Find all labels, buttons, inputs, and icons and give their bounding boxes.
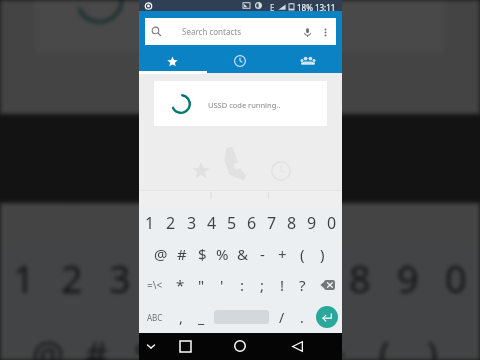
- staticText: +: [326, 329, 347, 360]
- staticText: 7: [301, 253, 323, 305]
- button[interactable]: More options: [317, 24, 333, 40]
- staticText: !: [280, 275, 285, 295]
- button[interactable]: 1: [0, 242, 48, 316]
- button[interactable]: @: [24, 316, 72, 360]
- staticText: ": [198, 275, 205, 295]
- button[interactable]: 2: [160, 207, 181, 238]
- button[interactable]: 9: [302, 207, 322, 238]
- button[interactable]: %: [168, 316, 216, 360]
- button[interactable]: 5: [192, 242, 240, 316]
- button[interactable]: &: [232, 238, 252, 269]
- button[interactable]: Search contacts: [145, 18, 336, 45]
- staticText: Search contacts: [182, 26, 241, 37]
- staticText: 6: [247, 212, 257, 234]
- button[interactable]: 7: [262, 207, 282, 238]
- staticText: $: [134, 329, 155, 360]
- button[interactable]: Recents: [206, 47, 274, 75]
- button[interactable]: 8: [336, 242, 384, 316]
- button[interactable]: -: [252, 238, 272, 269]
- button[interactable]: #: [72, 316, 120, 360]
- staticText: -: [282, 329, 294, 360]
- button[interactable]: $: [192, 238, 212, 269]
- staticText: 5: [205, 253, 227, 305]
- button[interactable]: ': [212, 269, 232, 301]
- staticText: %: [177, 329, 207, 360]
- staticText: 2: [61, 253, 83, 305]
- button[interactable]: _: [191, 301, 211, 333]
- button[interactable]: 2: [48, 242, 96, 316]
- button[interactable]: 9: [384, 242, 432, 316]
- button[interactable]: 6: [242, 207, 262, 238]
- button[interactable]: Enter: [316, 306, 338, 328]
- button[interactable]: !: [272, 269, 292, 301]
- staticText: 3: [109, 253, 131, 305]
- button[interactable]: (: [292, 238, 312, 269]
- staticText: 3: [187, 212, 197, 234]
- button[interactable]: Recent apps: [173, 334, 197, 358]
- button[interactable]: Favourites: [139, 47, 206, 75]
- button[interactable]: @: [150, 238, 171, 269]
- button[interactable]: .: [292, 301, 312, 333]
- button[interactable]: (: [360, 316, 408, 360]
- staticText: #: [177, 244, 187, 264]
- button[interactable]: ,: [170, 301, 191, 333]
- button[interactable]: Backspace: [312, 269, 342, 301]
- staticText: E: [270, 2, 275, 13]
- button[interactable]: 4: [202, 207, 222, 238]
- staticText: 8: [287, 212, 297, 234]
- button[interactable]: :: [232, 269, 252, 301]
- button[interactable]: 1: [139, 207, 160, 238]
- button[interactable]: *: [170, 269, 191, 301]
- staticText: 8: [349, 253, 371, 305]
- button[interactable]: ): [312, 238, 332, 269]
- button[interactable]: %: [212, 238, 232, 269]
- staticText: ;: [260, 275, 265, 295]
- staticText: %: [216, 244, 229, 264]
- button[interactable]: 0: [322, 207, 342, 238]
- button[interactable]: Space: [211, 301, 272, 333]
- button[interactable]: Voice search: [299, 24, 315, 40]
- staticText: USSD code running..: [208, 100, 281, 110]
- button[interactable]: =\<: [139, 269, 170, 301]
- button[interactable]: 6: [240, 242, 288, 316]
- staticText: @: [32, 329, 64, 360]
- staticText: _: [198, 308, 205, 327]
- button[interactable]: #: [171, 238, 192, 269]
- button[interactable]: Contacts: [274, 47, 342, 75]
- button[interactable]: ": [191, 269, 212, 301]
- staticText: 18% 13:11: [297, 2, 336, 13]
- staticText: 0: [327, 212, 337, 234]
- staticText: *: [176, 275, 185, 295]
- staticText: @: [154, 244, 168, 264]
- button[interactable]: 5: [222, 207, 242, 238]
- staticText: 4: [207, 212, 217, 234]
- button[interactable]: 7: [288, 242, 336, 316]
- button[interactable]: ): [408, 316, 456, 360]
- button[interactable]: -: [264, 316, 312, 360]
- button[interactable]: Hide keyboard: [139, 334, 163, 358]
- button[interactable]: 8: [282, 207, 302, 238]
- staticText: 1: [145, 212, 155, 234]
- button[interactable]: Back: [285, 334, 309, 358]
- button[interactable]: +: [312, 316, 360, 360]
- button[interactable]: 3: [181, 207, 202, 238]
- staticText: 2: [166, 212, 176, 234]
- staticText: 9: [397, 253, 419, 305]
- button[interactable]: /: [272, 301, 292, 333]
- staticText: 0: [445, 253, 467, 305]
- staticText: +: [278, 244, 287, 264]
- button[interactable]: $: [120, 316, 168, 360]
- button[interactable]: 3: [96, 242, 144, 316]
- staticText: ?: [299, 275, 306, 295]
- button[interactable]: ABC: [139, 301, 170, 333]
- button[interactable]: 4: [144, 242, 192, 316]
- button[interactable]: Home: [228, 334, 252, 358]
- button[interactable]: 0: [432, 242, 480, 316]
- staticText: &: [237, 244, 248, 264]
- staticText: $: [198, 244, 207, 264]
- staticText: ,: [179, 308, 183, 327]
- button[interactable]: ?: [292, 269, 312, 301]
- button[interactable]: ;: [252, 269, 272, 301]
- button[interactable]: &: [216, 316, 264, 360]
- button[interactable]: +: [272, 238, 292, 269]
